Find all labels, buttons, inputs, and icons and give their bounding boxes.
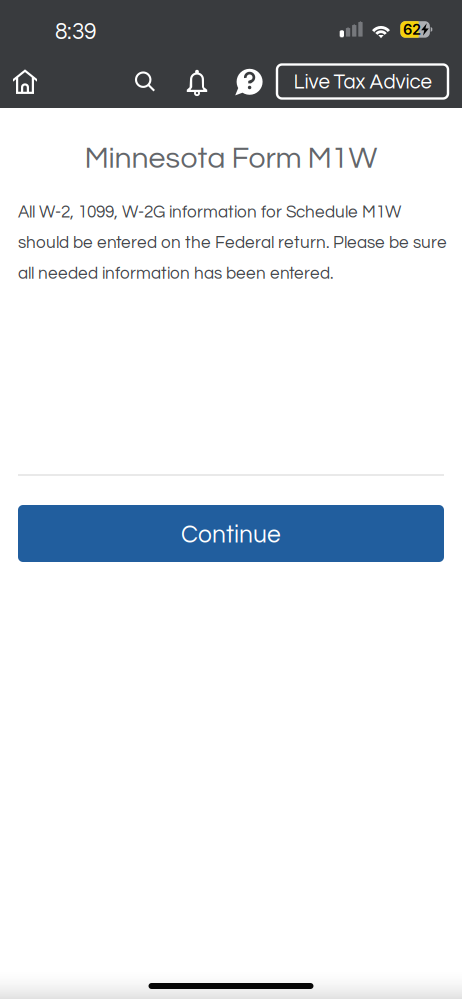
staticText: 8:39 <box>55 20 96 44</box>
staticText: Minnesota Form M1W <box>84 143 377 174</box>
staticText: Continue <box>181 522 281 548</box>
button[interactable]: Help <box>223 55 275 107</box>
button[interactable]: Live Tax Advice <box>277 64 448 98</box>
staticText: All W-2, 1099, W-2G information for Sche… <box>18 203 447 282</box>
button[interactable]: Notifications <box>171 55 223 107</box>
button[interactable]: Home <box>0 55 50 107</box>
staticText: 62 <box>403 21 421 38</box>
button[interactable]: Search <box>119 55 171 107</box>
button[interactable]: Continue <box>18 505 444 562</box>
staticText: Live Tax Advice <box>293 72 431 93</box>
